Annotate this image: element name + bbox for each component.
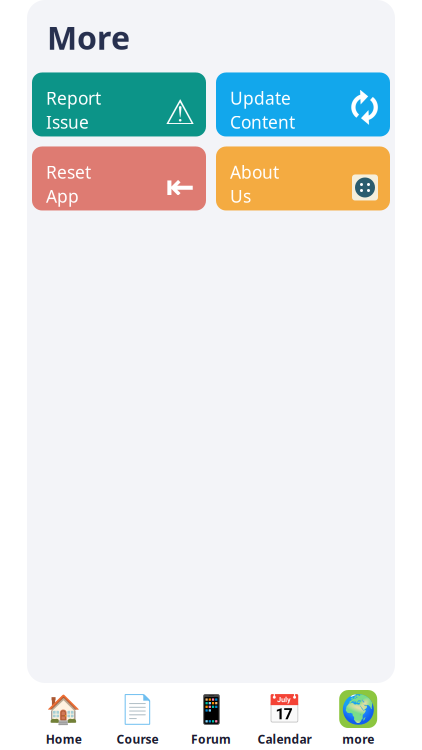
- staticText: Content: [230, 110, 295, 133]
- button[interactable]: 🌍: [321, 686, 395, 747]
- staticText: 📱: [193, 693, 228, 725]
- staticText: About: [230, 160, 279, 183]
- staticText: Forum: [191, 731, 231, 747]
- staticText: App: [46, 184, 79, 207]
- button[interactable]: 📅: [248, 686, 321, 747]
- staticText: ⇤: [165, 167, 194, 206]
- staticText: Home: [46, 731, 82, 747]
- staticText: 🏠: [46, 693, 81, 725]
- staticText: 🗘: [349, 86, 378, 139]
- staticText: Update: [230, 86, 291, 109]
- button[interactable]: About: [216, 146, 390, 210]
- staticText: ⚠: [164, 93, 195, 132]
- staticText: Course: [116, 731, 158, 747]
- button[interactable]: ⇤: [32, 146, 206, 210]
- button[interactable]: 📱: [174, 686, 248, 747]
- staticText: Issue: [46, 110, 89, 133]
- button[interactable]: 🏠: [27, 686, 101, 747]
- staticText: Report: [46, 86, 101, 109]
- staticText: 🌍: [341, 693, 376, 725]
- button[interactable]: ⚠: [32, 72, 206, 136]
- staticText: Calendar: [258, 731, 312, 747]
- staticText: Reset: [46, 160, 91, 183]
- staticText: 📄: [120, 693, 155, 725]
- staticText: More: [47, 16, 130, 58]
- staticText: 📅: [267, 693, 302, 725]
- staticText: more: [342, 731, 374, 747]
- button[interactable]: 🗘: [216, 72, 390, 136]
- staticText: Us: [230, 184, 251, 207]
- button[interactable]: 📄: [101, 686, 174, 747]
